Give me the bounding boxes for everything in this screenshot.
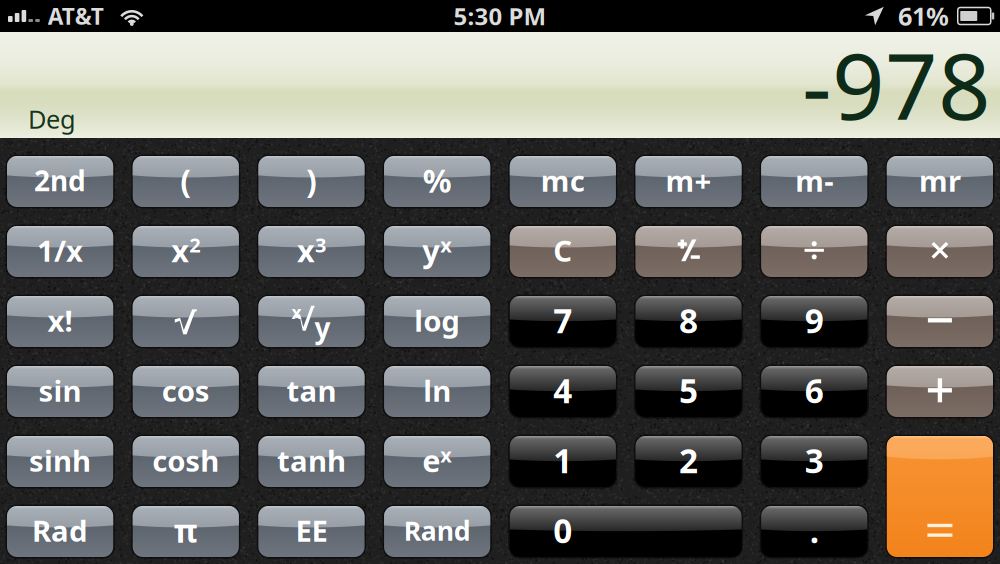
button[interactable]: ( [133, 156, 239, 207]
staticText: 5:30 PM [453, 0, 546, 32]
button[interactable]: x! [7, 296, 113, 347]
button[interactable]: % [384, 156, 490, 207]
staticText: tanh [277, 441, 346, 480]
staticText: x [291, 301, 301, 324]
staticText: y [314, 309, 330, 346]
button[interactable]: 1 [510, 436, 616, 487]
staticText: . [810, 508, 819, 552]
button[interactable]: 0 [510, 506, 742, 557]
staticText: π [174, 509, 198, 552]
staticText: ln [423, 371, 451, 410]
staticText: 5 [679, 368, 698, 412]
staticText: 2nd [34, 162, 86, 199]
button[interactable]: 8 [635, 296, 742, 347]
button[interactable]: x2 [133, 226, 239, 277]
button[interactable]: yx [384, 226, 490, 277]
staticText: Rad [32, 511, 88, 550]
button[interactable]: cos [133, 366, 239, 417]
button[interactable]: 7 [510, 296, 616, 347]
button[interactable]: EE [258, 506, 365, 557]
button[interactable] [133, 296, 239, 347]
button[interactable] [887, 226, 993, 277]
button[interactable]: mr [887, 156, 993, 207]
staticText: mc [541, 161, 585, 200]
staticText: m+ [665, 161, 711, 200]
button[interactable]: mc [510, 156, 616, 207]
button[interactable]: m- [761, 156, 867, 207]
button[interactable]: 4 [510, 366, 616, 417]
staticText: x! [48, 301, 73, 340]
staticText: Rand [404, 513, 471, 548]
button[interactable]: log [384, 296, 490, 347]
button[interactable]: . [761, 506, 867, 557]
staticText: cos [162, 371, 210, 410]
button[interactable]: 2 [635, 436, 742, 487]
staticText: sinh [29, 441, 91, 480]
staticText: ( [180, 159, 191, 202]
staticText: -978 [802, 23, 991, 145]
staticText: cosh [152, 441, 219, 480]
button[interactable]: 6 [761, 366, 867, 417]
button[interactable]: x [258, 296, 365, 347]
staticText: Deg [28, 102, 76, 136]
button[interactable] [887, 436, 993, 557]
staticText: C [553, 231, 572, 270]
button[interactable]: tan [258, 366, 365, 417]
button[interactable]: m+ [635, 156, 742, 207]
staticText: 1/x [37, 231, 83, 270]
button[interactable] [887, 366, 993, 417]
staticText: ) [306, 159, 317, 202]
button[interactable]: π [133, 506, 239, 557]
staticText: 2 [679, 438, 698, 482]
staticText: EE [295, 511, 327, 550]
staticText: 4 [553, 368, 572, 412]
button[interactable]: x3 [258, 226, 365, 277]
staticText: ex [422, 440, 452, 481]
staticText: 6 [805, 368, 824, 412]
button[interactable]: Rad [7, 506, 113, 557]
staticText: 1 [553, 438, 572, 482]
staticText: 61% [898, 0, 949, 33]
button[interactable]: 1/x [7, 226, 113, 277]
staticText: m- [795, 161, 833, 200]
button[interactable]: C [510, 226, 616, 277]
staticText: % [423, 159, 452, 202]
staticText: x2 [171, 230, 200, 271]
button[interactable] [761, 226, 867, 277]
button[interactable]: 3 [761, 436, 867, 487]
button[interactable]: 9 [761, 296, 867, 347]
button[interactable] [887, 296, 993, 347]
button[interactable]: ) [258, 156, 365, 207]
button[interactable]: Rand [384, 506, 490, 557]
staticText: sin [39, 371, 82, 410]
button[interactable]: tanh [258, 436, 365, 487]
staticText: tan [286, 371, 336, 410]
button[interactable]: ln [384, 366, 490, 417]
staticText: 3 [805, 438, 824, 482]
staticText: yx [422, 230, 452, 271]
staticText: x3 [297, 230, 326, 271]
staticText: AT&T [48, 1, 104, 31]
button[interactable] [635, 226, 742, 277]
staticText: log [414, 301, 460, 340]
staticText: 9 [805, 298, 824, 342]
staticText: 7 [553, 298, 572, 342]
button[interactable]: cosh [133, 436, 239, 487]
button[interactable]: sinh [7, 436, 113, 487]
staticText: 0 [553, 508, 572, 552]
staticText: 8 [679, 298, 698, 342]
button[interactable]: 2nd [7, 156, 113, 207]
staticText: mr [919, 161, 961, 200]
button[interactable]: sin [7, 366, 113, 417]
button[interactable]: ex [384, 436, 490, 487]
button[interactable]: 5 [635, 366, 742, 417]
